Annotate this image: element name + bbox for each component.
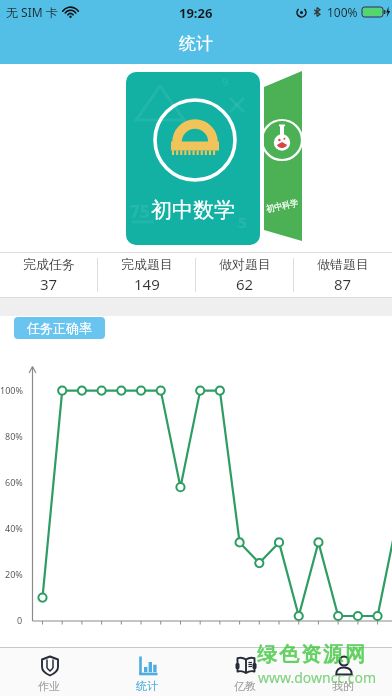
staticText: 87 (334, 274, 352, 294)
staticText: 149 (134, 274, 160, 294)
staticText: 19:26 (179, 4, 213, 22)
staticText: 任务正确率 (27, 320, 92, 336)
staticText: 75 (130, 200, 150, 223)
staticText: 无 SIM 卡 (6, 4, 58, 20)
staticText: 作业 (38, 679, 60, 693)
button[interactable]: 做对题目 (196, 253, 293, 297)
staticText: 完成任务 (23, 256, 75, 272)
staticText: 0 (17, 614, 23, 626)
staticText: 做对题目 (219, 256, 271, 272)
button[interactable]: 统计 (98, 648, 196, 696)
button[interactable]: 做错题目 (294, 253, 391, 297)
button[interactable]: 作业 (0, 648, 98, 696)
staticText: 20% (5, 568, 23, 580)
button[interactable]: 我的 (294, 648, 392, 696)
button[interactable]: 任务正确率 (14, 317, 105, 339)
staticText: 100% (327, 4, 358, 20)
button[interactable]: 75 (126, 72, 260, 245)
staticText: 37 (40, 274, 58, 294)
staticText: 100% (0, 384, 23, 396)
button[interactable]: 完成任务 (0, 253, 97, 297)
staticText: 初中数学 (151, 197, 235, 223)
staticText: 9 (222, 74, 229, 89)
button[interactable]: 亿教 (196, 648, 294, 696)
staticText: 完成题目 (121, 256, 173, 272)
staticText: 统计 (136, 679, 158, 693)
staticText: 亿教 (234, 679, 256, 693)
staticText: 我的 (332, 679, 354, 693)
staticText: 60% (5, 476, 23, 488)
button[interactable]: 完成题目 (98, 253, 195, 297)
staticText: 初中科学 (265, 197, 299, 214)
staticText: 统计 (179, 33, 213, 54)
staticText: 40% (5, 522, 23, 534)
staticText: 62 (236, 274, 254, 294)
staticText: 绿色资源网 (256, 642, 366, 667)
staticText: www.downcc.com (258, 668, 377, 687)
staticText: 80% (5, 430, 23, 442)
staticText: 做错题目 (317, 256, 369, 272)
staticText: 5 (238, 212, 247, 232)
